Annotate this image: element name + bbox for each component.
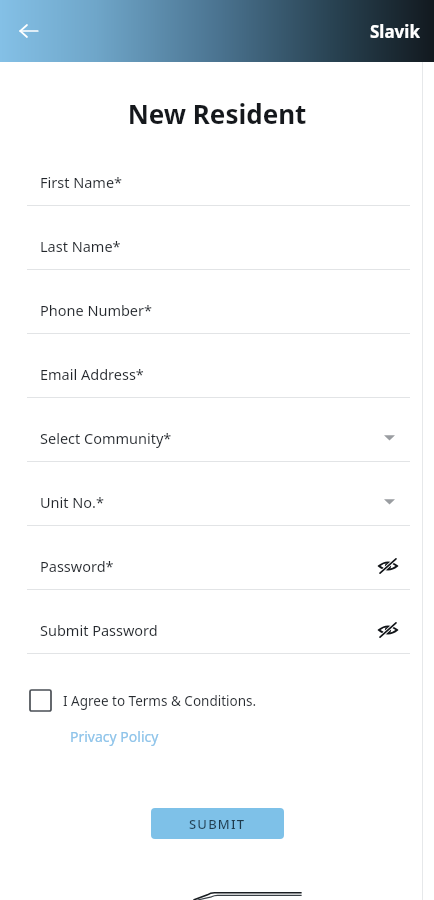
button[interactable]: Email Address* <box>0 350 434 414</box>
button[interactable]: SUBMIT <box>151 808 284 839</box>
button[interactable]: Unit No.* <box>0 478 434 542</box>
staticText: Select Community* <box>40 428 172 448</box>
button[interactable]: First Name* <box>0 158 434 222</box>
staticText: I Agree to Terms & Conditions. <box>63 692 257 710</box>
button[interactable]: Back <box>6 8 52 54</box>
staticText: SUBMIT <box>189 815 246 833</box>
button[interactable]: Show password <box>375 553 401 579</box>
staticText: Submit Password <box>40 620 158 640</box>
staticText: New Resident <box>0 96 434 131</box>
button[interactable]: I Agree to Terms & Conditions. <box>0 686 434 715</box>
button[interactable]: Select Community* <box>0 414 434 478</box>
button[interactable]: Last Name* <box>0 222 434 286</box>
button[interactable]: Phone Number* <box>0 286 434 350</box>
staticText: Email Address* <box>40 364 144 384</box>
button[interactable]: Password* <box>0 542 434 606</box>
button[interactable]: Submit Password <box>0 606 434 670</box>
button[interactable]: Privacy Policy <box>70 725 159 748</box>
staticText: Password* <box>40 556 114 576</box>
staticText: Slavik <box>370 20 420 43</box>
staticText: Privacy Policy <box>70 727 159 746</box>
staticText: First Name* <box>40 172 123 192</box>
staticText: Last Name* <box>40 236 121 256</box>
button[interactable]: Show password <box>375 617 401 643</box>
staticText: Phone Number* <box>40 300 153 320</box>
staticText: Unit No.* <box>40 492 104 512</box>
